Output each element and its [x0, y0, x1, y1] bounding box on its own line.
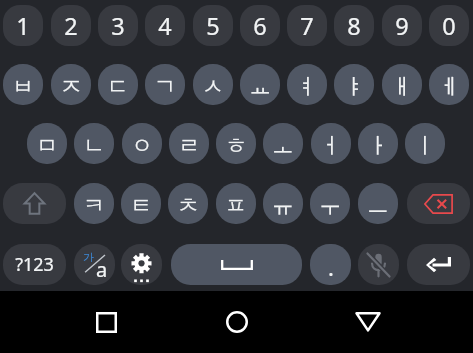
button[interactable]: ㅈ	[51, 64, 91, 105]
staticText: .	[328, 252, 334, 282]
button[interactable]: ㅅ	[193, 64, 233, 105]
staticText: 가	[83, 250, 94, 264]
staticText: 4	[158, 10, 172, 42]
button[interactable]: ㅓ	[311, 123, 351, 164]
staticText: ㅁ	[36, 132, 58, 160]
button[interactable]: ?123	[3, 244, 66, 285]
staticText: a	[96, 256, 108, 283]
button[interactable]: ㅎ	[216, 123, 256, 164]
staticText: 2	[64, 10, 78, 42]
button[interactable]: 4	[145, 5, 185, 46]
staticText: ㅕ	[296, 73, 318, 101]
button[interactable]: 9	[382, 5, 422, 46]
button[interactable]: ㄷ	[98, 64, 138, 105]
button[interactable]: ㅋ	[74, 183, 114, 224]
button[interactable]: .	[310, 244, 351, 285]
staticText: ㅐ	[391, 73, 413, 101]
staticText: ㄴ	[83, 132, 105, 160]
button[interactable]: 6	[240, 5, 280, 46]
button[interactable]: 1	[3, 5, 43, 46]
button[interactable]: Enter	[407, 244, 470, 285]
button[interactable]: ㅜ	[310, 183, 350, 224]
button[interactable]: ㅌ	[121, 183, 161, 224]
staticText: ㅂ	[12, 73, 34, 101]
button[interactable]: Backspace	[407, 183, 470, 224]
button[interactable]: ㄱ	[145, 64, 185, 105]
staticText: 6	[253, 10, 267, 42]
button[interactable]: Space	[171, 244, 302, 285]
staticText: ?123	[15, 252, 54, 277]
button[interactable]: ㅍ	[216, 183, 256, 224]
button[interactable]: ㅊ	[168, 183, 208, 224]
staticText: ㅣ	[414, 132, 436, 160]
button[interactable]: 7	[287, 5, 327, 46]
staticText: ㅋ	[83, 192, 105, 220]
staticText: ㅇ	[131, 132, 153, 160]
button[interactable]: Voice input disabled	[358, 244, 399, 285]
staticText: ㅡ	[367, 192, 389, 220]
button[interactable]: 8	[334, 5, 374, 46]
button[interactable]: Switch language	[74, 244, 115, 285]
staticText: ㅏ	[367, 132, 389, 160]
button[interactable]: Settings	[121, 244, 162, 285]
staticText: ㅍ	[225, 192, 247, 220]
button[interactable]: ㅂ	[3, 64, 43, 105]
staticText: ㄹ	[178, 132, 200, 160]
button[interactable]: ㅇ	[122, 123, 162, 164]
staticText: 5	[206, 10, 220, 42]
button[interactable]: 3	[98, 5, 138, 46]
staticText: ㅎ	[225, 132, 247, 160]
button[interactable]: ㅔ	[429, 64, 469, 105]
button[interactable]: ㅏ	[358, 123, 398, 164]
staticText: ㅗ	[272, 132, 294, 160]
staticText: 3	[111, 10, 125, 42]
button[interactable]: ㅛ	[240, 64, 280, 105]
button[interactable]: ㅣ	[405, 123, 445, 164]
staticText: ㅌ	[130, 192, 152, 220]
staticText: ㅔ	[438, 73, 460, 101]
staticText: ㅛ	[249, 73, 271, 101]
staticText: ㄱ	[154, 73, 176, 101]
button[interactable]: ㄴ	[74, 123, 114, 164]
button[interactable]: ㄹ	[169, 123, 209, 164]
staticText: ㅈ	[60, 73, 82, 101]
button[interactable]: Back	[355, 312, 381, 332]
staticText: ㅜ	[319, 192, 341, 220]
staticText: ㅅ	[202, 73, 224, 101]
staticText: 1	[16, 10, 30, 42]
staticText: ㅑ	[343, 73, 365, 101]
button[interactable]: 0	[429, 5, 469, 46]
staticText: ㅓ	[320, 132, 342, 160]
button[interactable]: ㅑ	[334, 64, 374, 105]
button[interactable]: ㅠ	[263, 183, 303, 224]
button[interactable]: ㅕ	[287, 64, 327, 105]
staticText: 7	[300, 10, 314, 42]
staticText: 0	[442, 10, 456, 42]
staticText: 9	[395, 10, 409, 42]
button[interactable]: 5	[193, 5, 233, 46]
button[interactable]: ㅁ	[27, 123, 67, 164]
staticText: 8	[347, 10, 361, 42]
button[interactable]: Shift	[3, 183, 66, 224]
button[interactable]: 2	[51, 5, 91, 46]
staticText: ㅠ	[272, 192, 294, 220]
button[interactable]: ㅗ	[263, 123, 303, 164]
button[interactable]: ㅡ	[358, 183, 398, 224]
button[interactable]: Home	[226, 311, 248, 333]
staticText: ㄷ	[107, 73, 129, 101]
button[interactable]: Recents	[96, 312, 117, 333]
button[interactable]: ㅐ	[382, 64, 422, 105]
staticText: ㅊ	[177, 192, 199, 220]
